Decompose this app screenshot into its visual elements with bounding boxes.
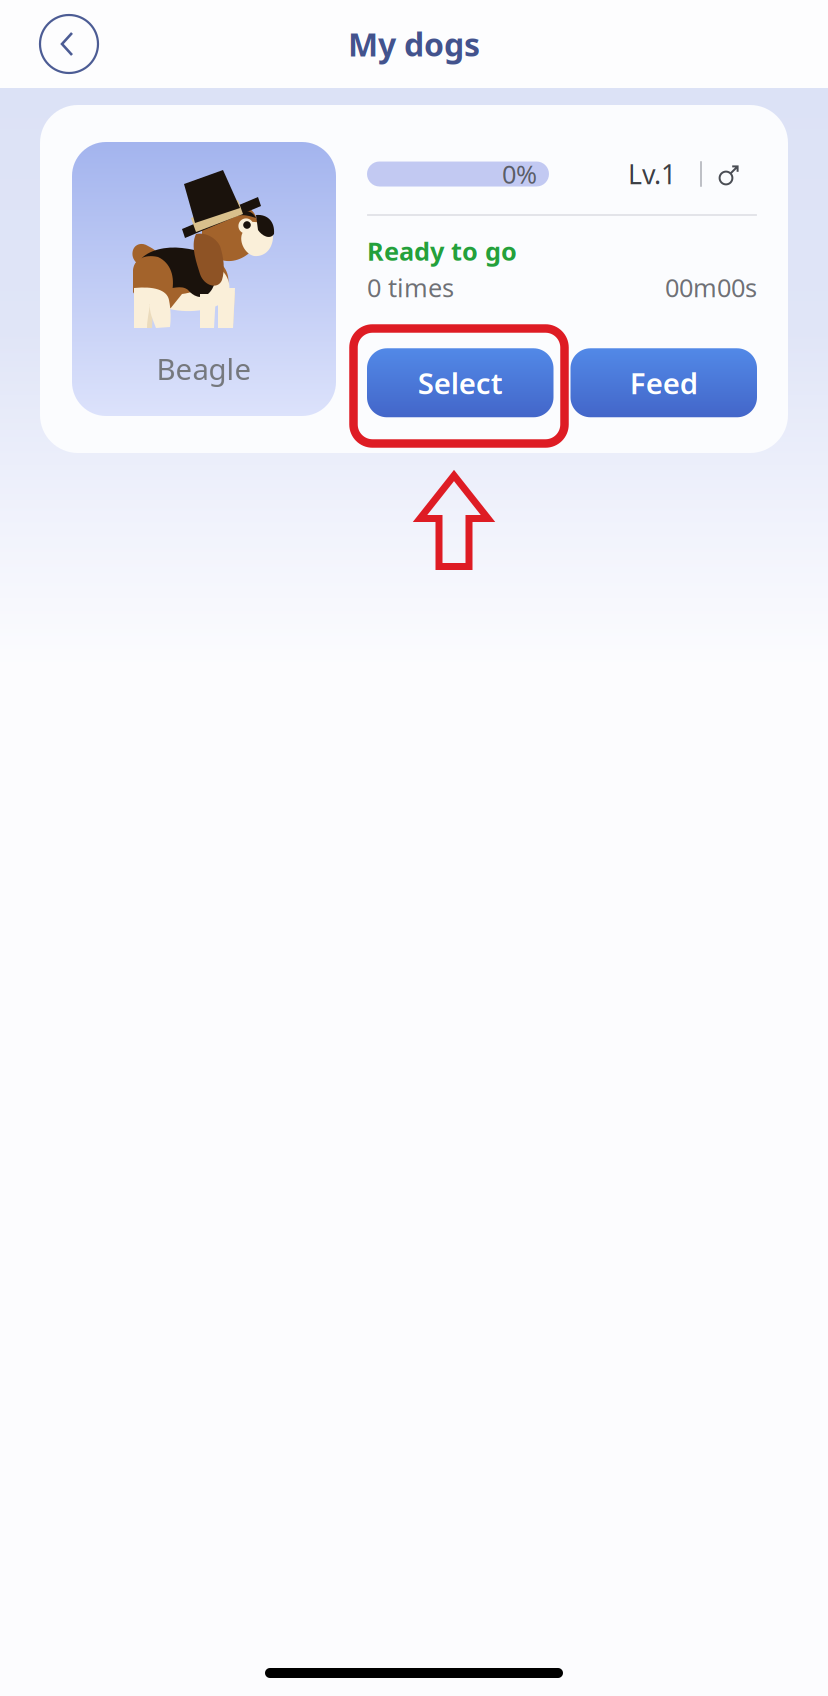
button[interactable]: Select [367, 348, 553, 417]
staticText: Select [418, 363, 503, 402]
staticText: 0% [502, 157, 537, 191]
staticText: My dogs [348, 23, 480, 65]
staticText: 0 times [367, 271, 454, 304]
staticText: Beagle [156, 349, 251, 388]
staticText: 00m00s [665, 271, 757, 304]
button[interactable]: Feed [570, 348, 757, 417]
staticText: Ready to go [367, 234, 517, 268]
staticText: Lv.1 [628, 156, 676, 192]
staticText: Feed [630, 363, 698, 402]
button[interactable]: Back [31, 6, 107, 82]
